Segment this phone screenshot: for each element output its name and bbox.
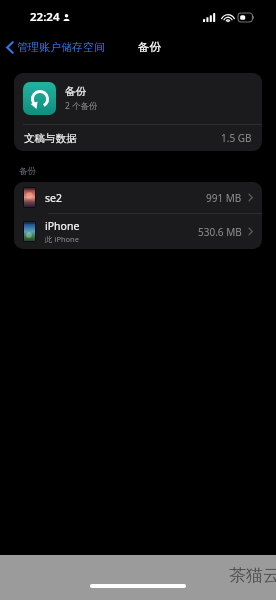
button[interactable]: 文稿与数据	[14, 125, 262, 151]
other: 返回	[6, 41, 14, 54]
staticText: 1.5 GB	[221, 131, 252, 145]
staticText: 530.6 MB	[198, 225, 242, 239]
button[interactable]: 返回	[0, 36, 111, 58]
staticText: iPhone	[45, 219, 80, 233]
staticText: se2	[45, 191, 62, 205]
staticText: 2 个备份	[65, 100, 98, 112]
staticText: 茶猫云	[229, 565, 276, 586]
staticText: 备份	[65, 85, 86, 98]
staticText: 22:24	[30, 9, 60, 25]
button[interactable]: 备份	[14, 73, 262, 124]
button[interactable]: iPhone	[14, 214, 262, 249]
button[interactable]: se2	[14, 182, 262, 213]
staticText: 备份	[19, 166, 36, 177]
staticText: 备份	[138, 40, 161, 54]
staticText: 991 MB	[206, 191, 242, 205]
staticText: 管理账户储存空间	[17, 40, 105, 54]
staticText: 文稿与数据	[24, 132, 77, 145]
staticText: 此 iPhone	[45, 234, 79, 244]
